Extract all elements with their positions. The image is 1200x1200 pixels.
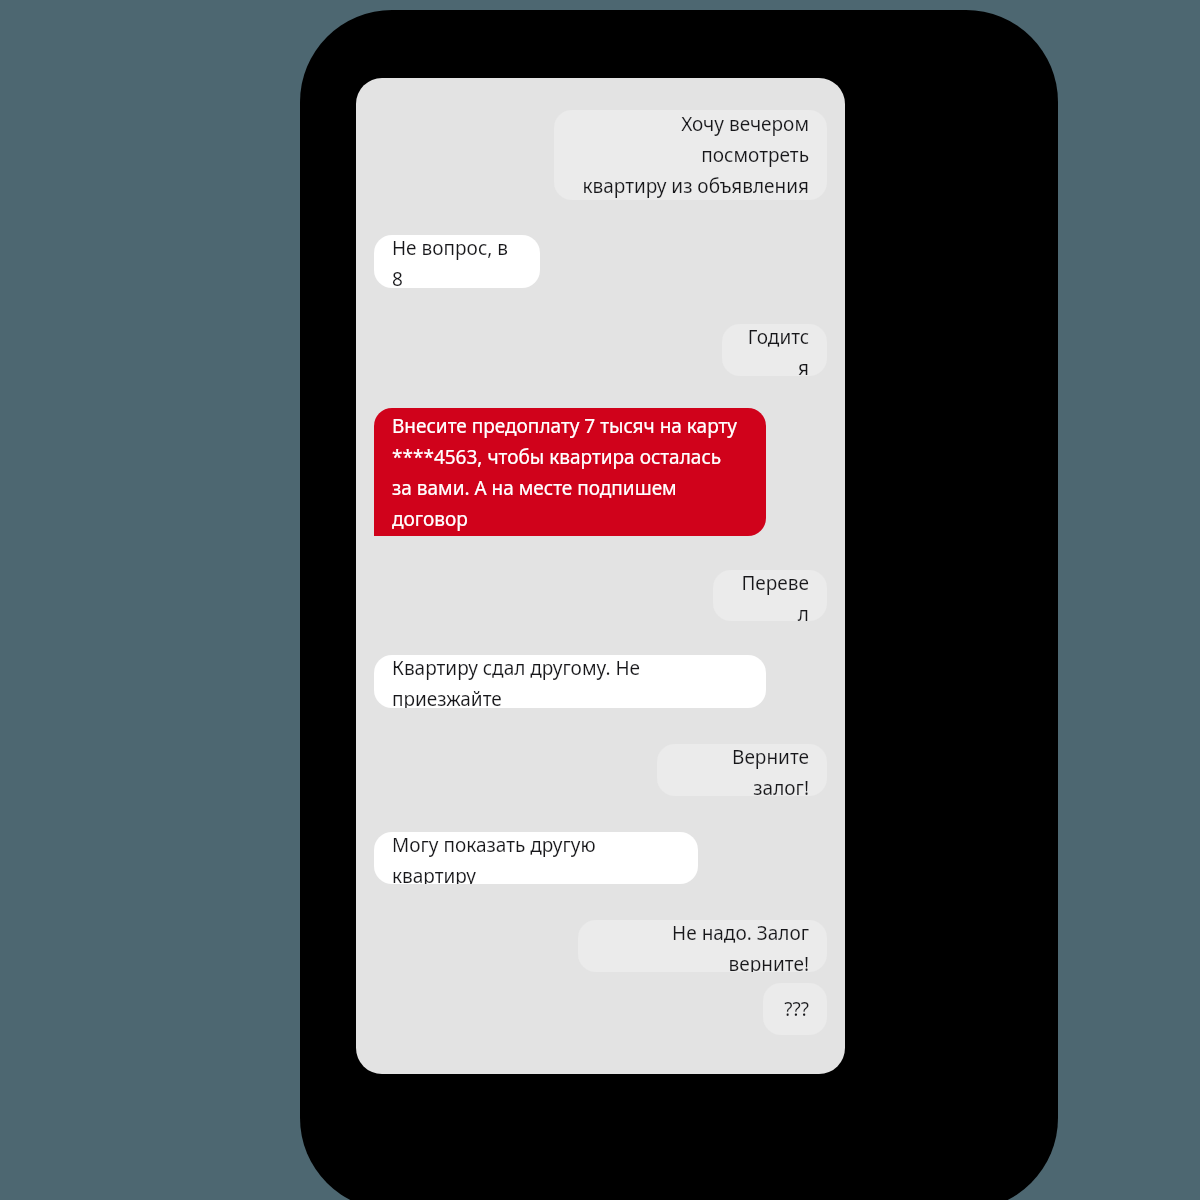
button[interactable]: Перевел bbox=[713, 570, 827, 621]
button[interactable]: Верните залог! bbox=[657, 744, 827, 796]
staticText: Годится bbox=[740, 324, 809, 376]
button[interactable]: Не вопрос, в 8 bbox=[374, 235, 540, 288]
staticText: Верните залог! bbox=[675, 744, 809, 796]
staticText: Перевел bbox=[731, 570, 809, 621]
staticText: Хочу вечером посмотреть квартиру из объя… bbox=[572, 111, 809, 199]
staticText: Внесите предоплату 7 тысяч на карту ****… bbox=[392, 413, 748, 532]
staticText: Не надо. Залог верните! bbox=[596, 920, 809, 972]
button[interactable]: Хочу вечером посмотреть квартиру из объя… bbox=[554, 110, 827, 200]
button[interactable]: Внесите предоплату 7 тысяч на карту ****… bbox=[374, 408, 766, 536]
staticText: ??? bbox=[781, 996, 809, 1022]
button[interactable]: Могу показать другую квартиру bbox=[374, 832, 698, 884]
button[interactable]: Не надо. Залог верните! bbox=[578, 920, 827, 972]
button[interactable]: Квартиру сдал другому. Не приезжайте bbox=[374, 655, 766, 708]
staticText: Не вопрос, в 8 bbox=[392, 235, 522, 288]
button[interactable]: Годится bbox=[722, 324, 827, 376]
staticText: Квартиру сдал другому. Не приезжайте bbox=[392, 655, 748, 708]
button[interactable]: ??? bbox=[763, 983, 827, 1035]
staticText: Могу показать другую квартиру bbox=[392, 832, 680, 884]
